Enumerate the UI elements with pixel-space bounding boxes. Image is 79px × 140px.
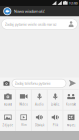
staticText: Wideo [19,103,28,106]
staticText: Film [21,123,26,127]
staticText: Więcej [67,123,76,127]
staticText: Lokaliz. [51,103,60,106]
button[interactable]: Audio [32,89,47,110]
staticText: Zadaj telefonu pytanie [15,81,51,86]
staticText: 10:48 [69,0,78,6]
staticText: Plik [53,123,58,127]
button[interactable]: Attach [2,78,11,88]
staticText: Nowa wiadomość [14,9,45,14]
staticText: Zadaj pytanie wiele osób naraz [5,21,57,27]
button[interactable]: Aparat [0,89,16,110]
button[interactable]: Lokaliz. [47,89,63,110]
button[interactable]: Zdjęcie [0,110,16,131]
button[interactable]: Send [68,78,77,88]
staticText: Dźwięk [35,123,44,127]
staticText: Audio [35,103,44,106]
button[interactable]: Plik [47,110,63,131]
staticText: Kontakt [66,103,76,106]
button[interactable]: Wideo [16,89,32,110]
staticText: Zdjęcie [2,123,13,127]
button[interactable]: Więcej [63,110,79,131]
button[interactable]: Dźwięk [32,110,47,131]
button[interactable]: Film [16,110,32,131]
button[interactable]: Kontakt [63,89,79,110]
button[interactable]: Back [3,7,12,16]
staticText: Aparat [4,103,12,106]
button[interactable]: Zadaj pytanie wiele osób naraz [2,19,77,29]
